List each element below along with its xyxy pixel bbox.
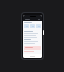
button[interactable]: Card [36, 24, 41, 28]
button[interactable]: Power button [43, 30, 44, 35]
button[interactable]: Card [30, 24, 35, 28]
button[interactable]: Phone device preview [21, 12, 44, 60]
button[interactable] [24, 46, 41, 50]
button[interactable]: Card [24, 24, 29, 28]
